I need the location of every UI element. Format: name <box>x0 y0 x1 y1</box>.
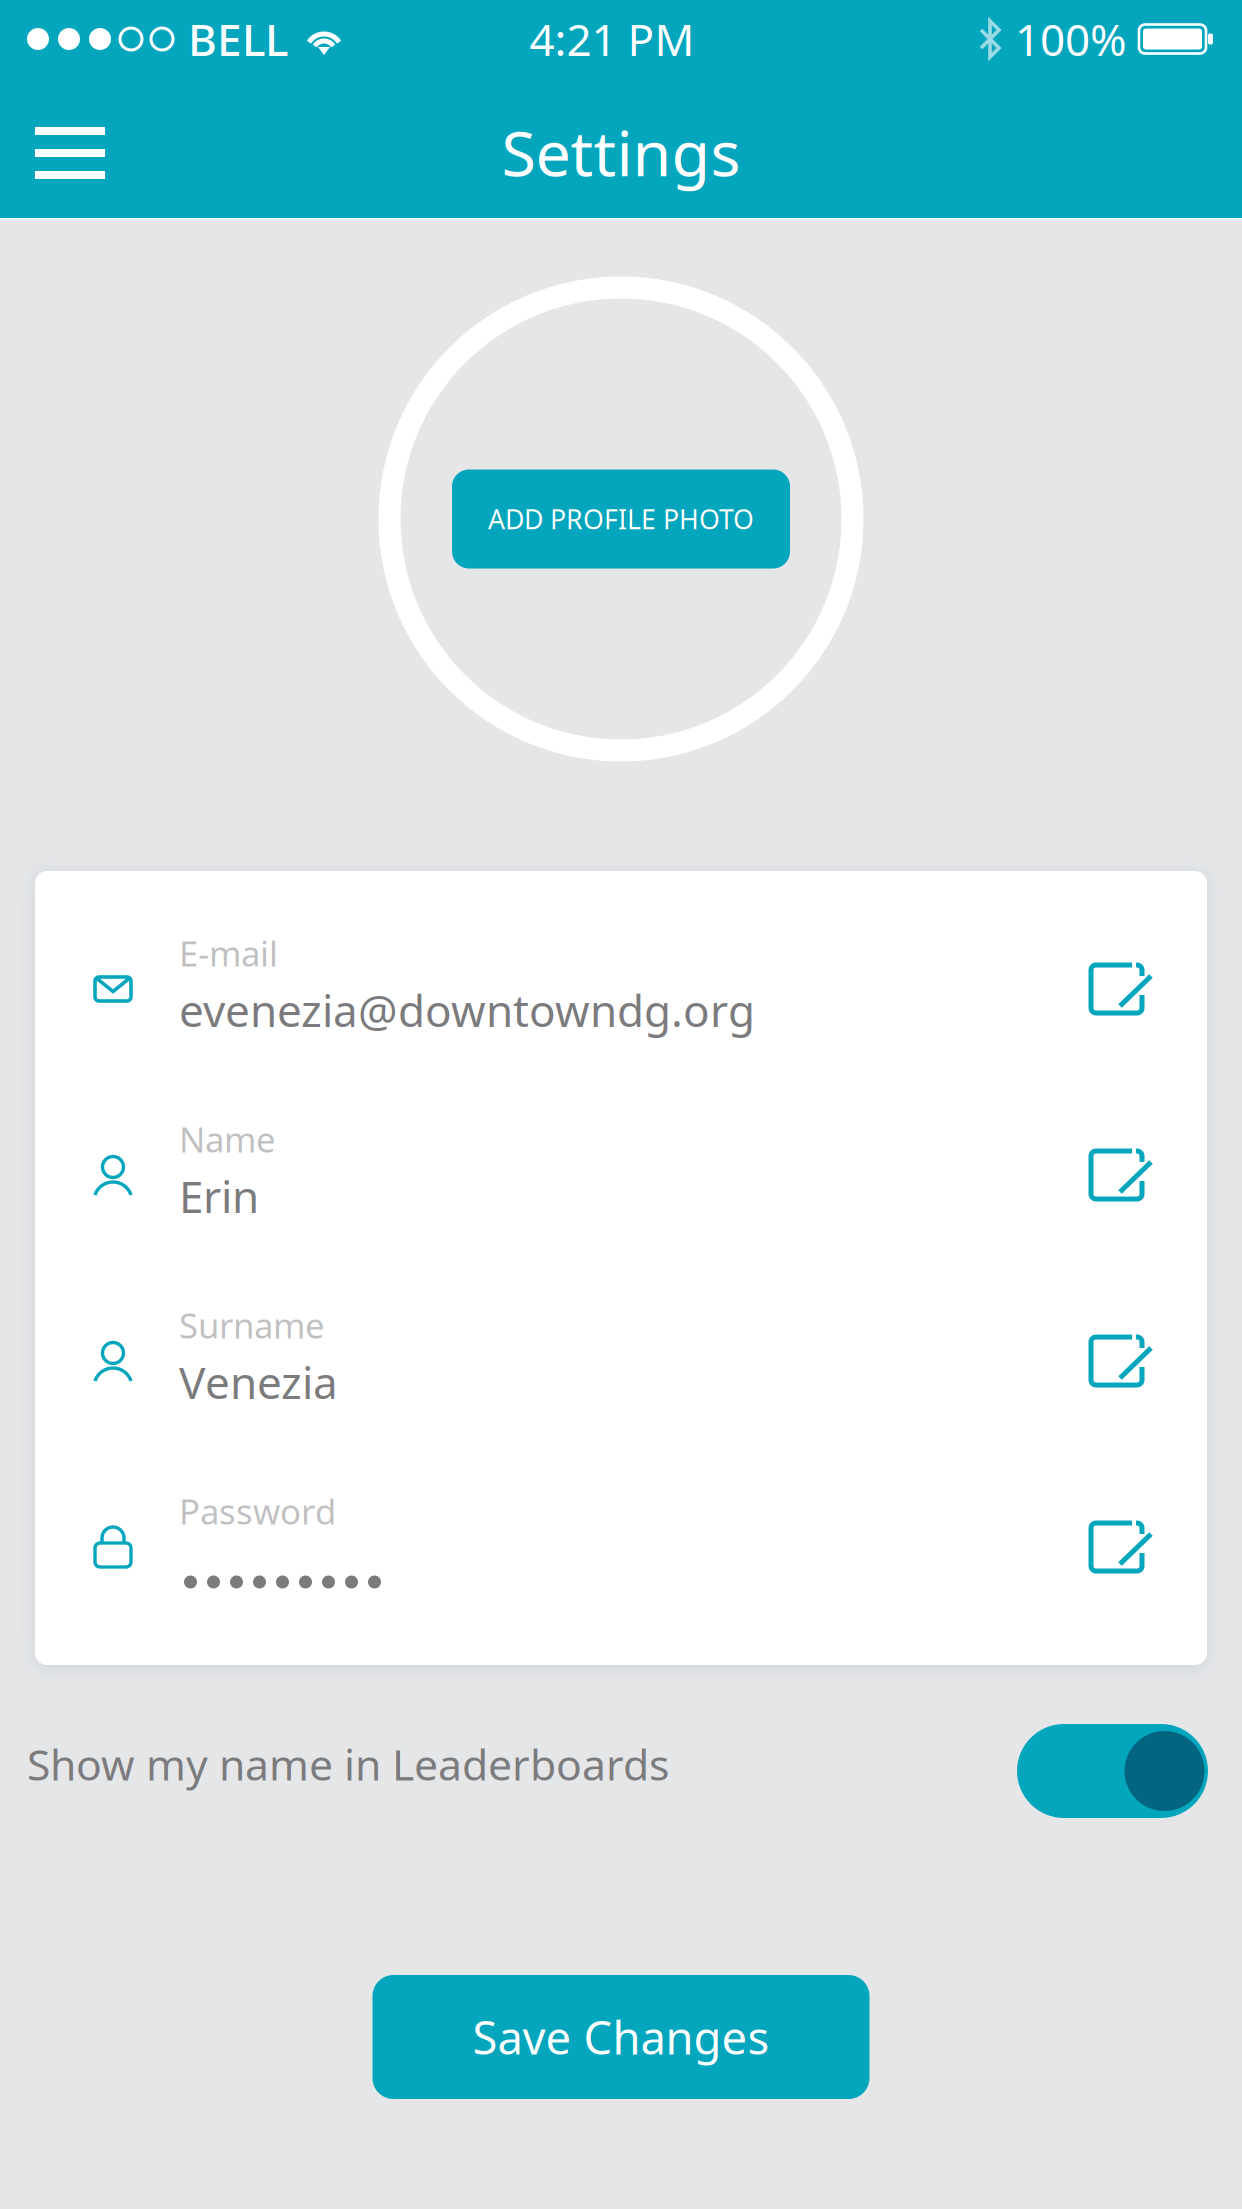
button[interactable]: ADD PROFILE PHOTO <box>452 469 790 568</box>
button[interactable]: Menu <box>0 78 140 218</box>
staticText: ADD PROFILE PHOTO <box>488 501 754 537</box>
staticText: evenezia@downtowndg.org <box>179 981 755 1039</box>
staticText: BELL <box>188 10 288 68</box>
staticText: Surname <box>179 1302 325 1348</box>
staticText: E-mail <box>179 930 278 976</box>
staticText: Name <box>179 1116 276 1162</box>
staticText: Show my name in Leaderboards <box>27 1736 669 1792</box>
button[interactable]: Edit Password <box>1071 1487 1171 1607</box>
button[interactable]: Show my name in Leaderboards <box>0 1691 1242 1851</box>
button[interactable]: Edit Name <box>1071 1115 1171 1235</box>
staticText: Erin <box>179 1167 259 1225</box>
staticText: Password <box>179 1488 336 1534</box>
staticText: Save Changes <box>472 2007 769 2067</box>
staticText: Venezia <box>179 1353 338 1411</box>
button[interactable]: Edit Surname <box>1071 1301 1171 1421</box>
staticText: 4:21 PM <box>529 10 694 68</box>
button[interactable]: Save Changes <box>372 1975 869 2099</box>
button[interactable]: Edit E-mail <box>1071 929 1171 1049</box>
staticText: Settings <box>501 110 740 194</box>
staticText: 100% <box>1015 10 1127 68</box>
